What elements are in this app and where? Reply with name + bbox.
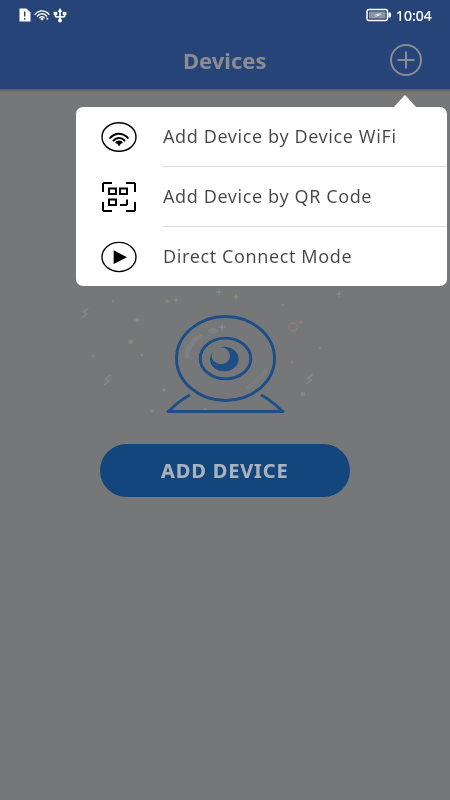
staticText: Add Device by Device WiFi xyxy=(163,124,397,149)
button[interactable]: Add Device by QR Code xyxy=(76,167,447,226)
staticText: Add Device by QR Code xyxy=(163,184,373,209)
button[interactable]: Add device xyxy=(386,40,426,80)
staticText: Direct Connect Mode xyxy=(163,244,353,269)
staticText: 10:04 xyxy=(396,6,432,25)
button[interactable]: Direct Connect Mode xyxy=(76,227,447,286)
staticText: Devices xyxy=(183,45,267,75)
button[interactable]: Add Device by Device WiFi xyxy=(76,107,447,166)
button[interactable]: ADD DEVICE xyxy=(100,444,350,497)
staticText: ADD DEVICE xyxy=(161,457,289,484)
